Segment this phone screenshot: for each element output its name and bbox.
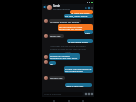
staticText: sure <box>85 31 90 34</box>
staticText: have a nice day <box>66 84 84 87</box>
button[interactable]: Contact avatar <box>44 55 48 59</box>
staticText: at the usual place <box>68 40 88 43</box>
button[interactable]: Attach <box>84 92 87 95</box>
button[interactable]: at the usual place <box>67 39 93 43</box>
button[interactable]: great see you <box>49 34 64 38</box>
button[interactable]: so see you tomorrow at the coffee place <box>64 66 93 73</box>
staticText: do you want to meet tomorrow for coffee <box>59 25 92 31</box>
button[interactable]: have a nice day <box>65 83 92 87</box>
staticText: thanks so looking forward to see you soo… <box>50 54 79 60</box>
button[interactable]: More options <box>90 6 93 9</box>
button[interactable]: hi, how are you? <box>70 10 93 14</box>
staticText: i'm fine, what about you <box>65 14 92 18</box>
staticText: Write a message <box>44 93 62 96</box>
button[interactable]: Write a message <box>43 92 83 96</box>
button[interactable]: Attach <box>90 92 93 95</box>
staticText: perfect see you <box>50 76 64 80</box>
button[interactable]: Attach <box>87 92 90 95</box>
button[interactable]: Video call <box>84 6 87 9</box>
staticText: last seen recently <box>53 8 71 10</box>
button[interactable]: thanks so looking forward to see you soo… <box>49 53 80 60</box>
button[interactable]: Contact avatar <box>44 60 48 64</box>
button[interactable]: Back <box>43 5 47 9</box>
staticText: messages are end to end encrypted nobody… <box>48 45 88 54</box>
button[interactable]: Call <box>87 6 90 9</box>
button[interactable]: System navigation <box>80 98 85 102</box>
staticText: hi, how are you? <box>71 11 90 14</box>
button[interactable]: ok <box>49 61 56 65</box>
staticText: Sarah <box>53 4 61 8</box>
button[interactable]: Contact avatar <box>44 34 48 38</box>
button[interactable]: Contact avatar <box>44 19 48 23</box>
button[interactable]: Contact avatar <box>44 76 48 80</box>
staticText: all good thanks for asking <box>50 20 80 23</box>
button[interactable]: System navigation <box>66 98 71 102</box>
button[interactable]: sure <box>84 30 93 34</box>
button[interactable]: perfect see you <box>49 76 65 80</box>
staticText: ok <box>50 62 53 65</box>
staticText: great see you <box>50 34 63 38</box>
button[interactable]: do you want to meet tomorrow for coffee <box>58 24 93 31</box>
button[interactable]: System navigation <box>51 98 56 102</box>
button[interactable]: Sarah <box>47 4 84 10</box>
button[interactable]: all good thanks for asking <box>49 19 81 23</box>
button[interactable]: i'm fine, what about you <box>64 14 93 18</box>
staticText: so see you tomorrow at the coffee place <box>65 67 92 73</box>
